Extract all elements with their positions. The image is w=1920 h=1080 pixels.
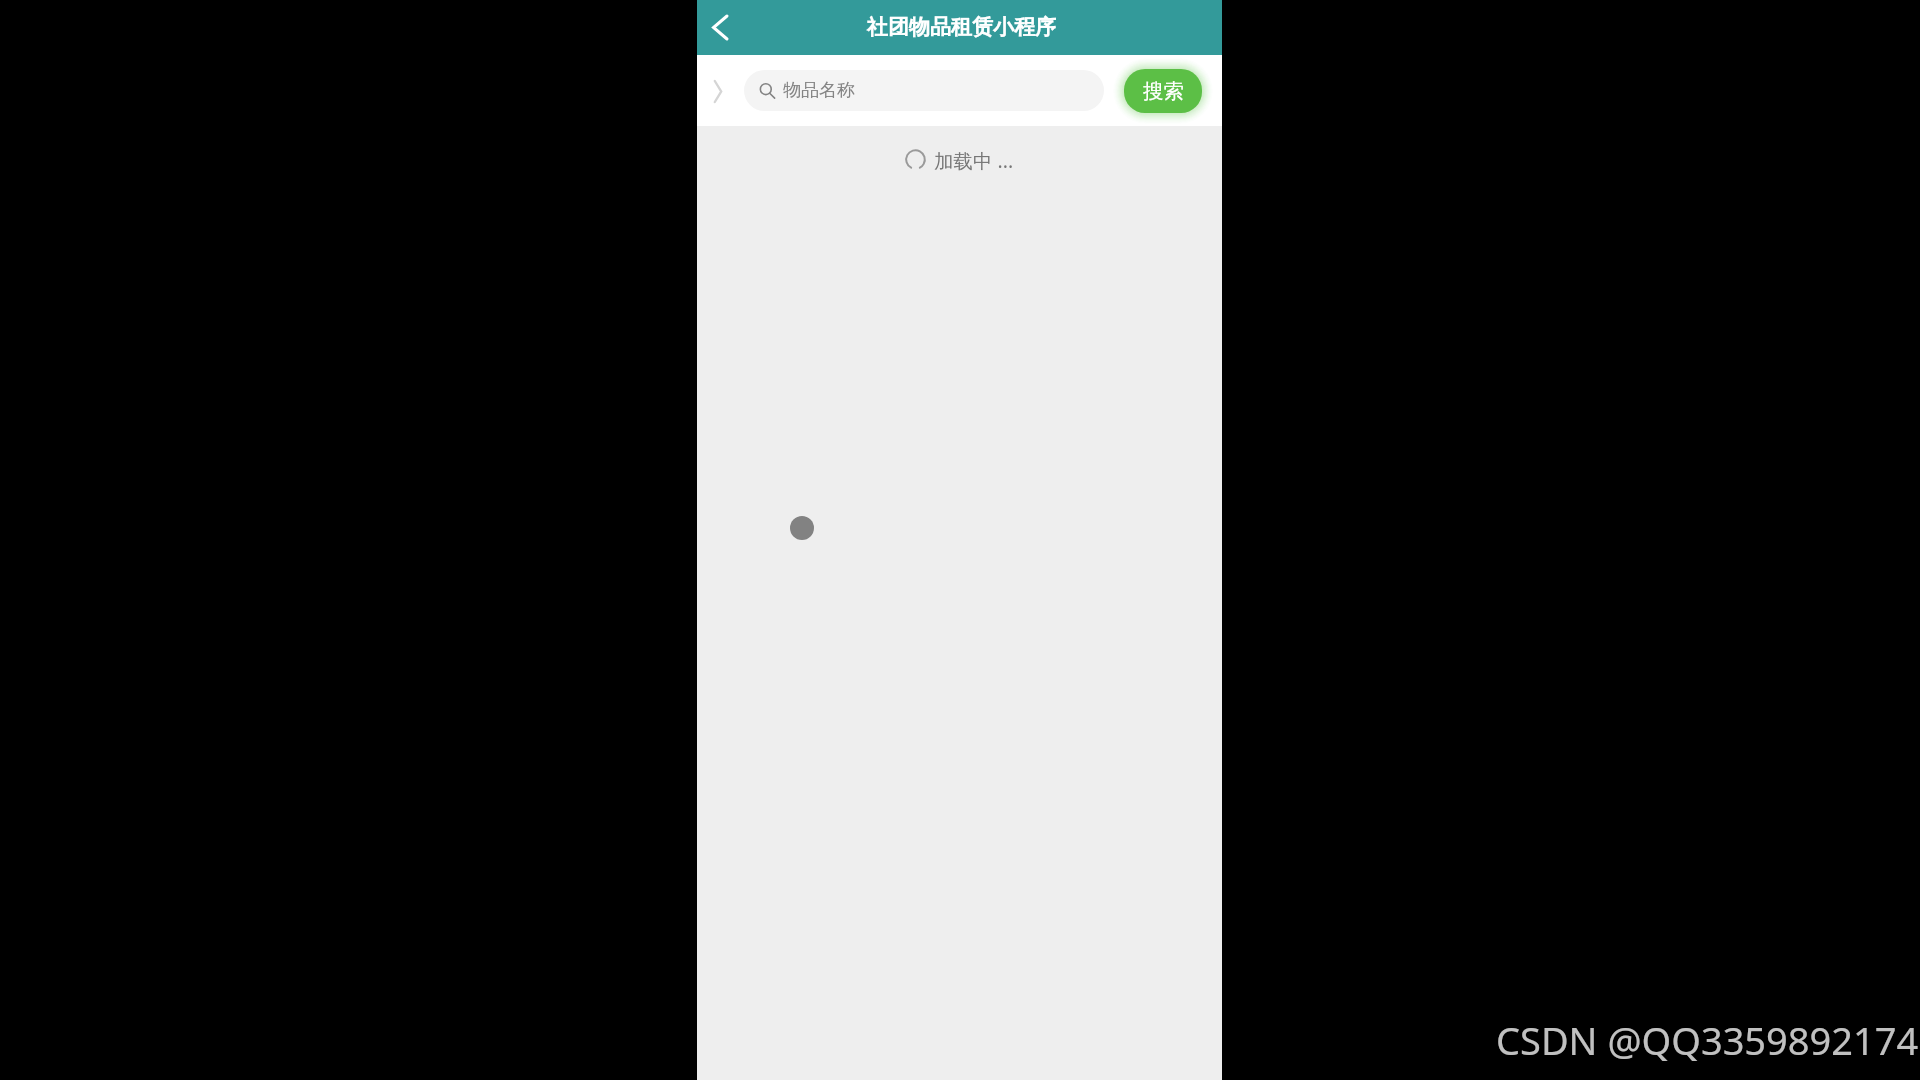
button[interactable]: Back [699,0,739,55]
staticText: 搜索 [1143,78,1184,104]
staticText: CSDN @QQ3359892174 [1496,1014,1919,1066]
staticText: 物品名称 [783,79,855,102]
staticText: 社团物品租赁小程序 [867,14,1056,40]
button[interactable]: 物品名称 [744,70,1104,111]
staticText: 加载中 ... [934,147,1014,174]
button[interactable]: 搜索 [1124,69,1202,113]
button[interactable]: Expand filters [703,66,733,116]
